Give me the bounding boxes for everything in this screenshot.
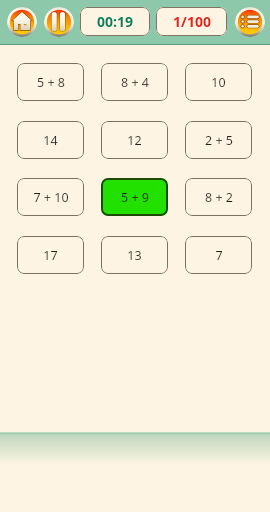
staticText: 8 + 2 <box>205 189 233 206</box>
staticText: 17 <box>43 247 58 264</box>
staticText: 7 <box>215 247 223 264</box>
staticText: 14 <box>43 132 58 149</box>
staticText: 7 + 10 <box>33 189 69 206</box>
button[interactable]: 8 + 2 <box>185 178 252 216</box>
staticText: 00:19 <box>97 12 133 31</box>
button[interactable]: Home <box>7 7 37 37</box>
button[interactable]: 12 <box>101 121 168 159</box>
button[interactable]: 7 + 10 <box>17 178 84 216</box>
button[interactable]: Pause <box>44 7 74 37</box>
staticText: 2 + 5 <box>205 132 233 149</box>
button[interactable]: Menu <box>235 7 265 37</box>
staticText: 5 + 9 <box>121 189 149 206</box>
button[interactable]: 13 <box>101 236 168 274</box>
button[interactable]: 17 <box>17 236 84 274</box>
button[interactable]: 00:19 <box>80 7 150 36</box>
button[interactable]: 1/100 <box>156 7 227 36</box>
staticText: 5 + 8 <box>37 74 65 91</box>
staticText: 1/100 <box>173 12 211 31</box>
button[interactable]: 2 + 5 <box>185 121 252 159</box>
button[interactable]: 10 <box>185 63 252 101</box>
staticText: 12 <box>127 132 142 149</box>
staticText: 13 <box>127 247 142 264</box>
button[interactable]: 7 <box>185 236 252 274</box>
staticText: 8 + 4 <box>121 74 149 91</box>
button[interactable]: 14 <box>17 121 84 159</box>
staticText: 10 <box>211 74 226 91</box>
button[interactable]: 5 + 9 <box>101 178 168 216</box>
button[interactable]: 5 + 8 <box>17 63 84 101</box>
button[interactable]: 8 + 4 <box>101 63 168 101</box>
